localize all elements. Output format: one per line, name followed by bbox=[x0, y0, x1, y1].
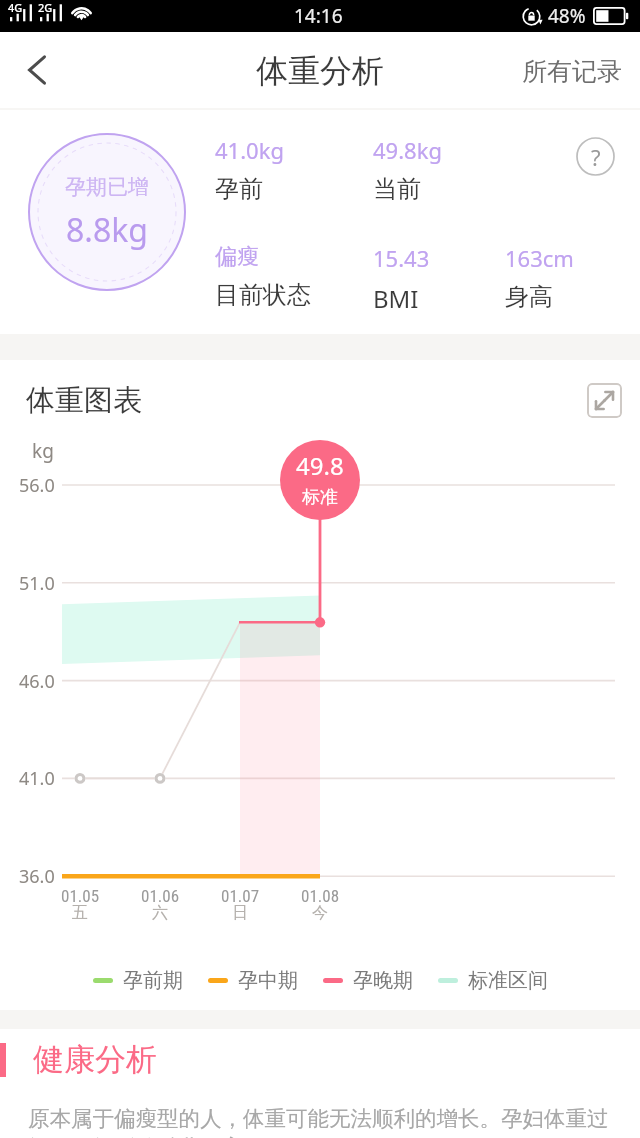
staticText: 日 bbox=[232, 903, 248, 923]
staticText: 8.8kg bbox=[66, 208, 148, 252]
staticText: 孕晚期 bbox=[353, 968, 413, 993]
staticText: 体重图表 bbox=[26, 382, 142, 419]
staticText: 孕期已增 bbox=[65, 174, 149, 200]
staticText: 01.05 bbox=[61, 886, 100, 906]
staticText: 15.43 bbox=[373, 243, 430, 273]
staticText: 当前 bbox=[373, 174, 421, 204]
staticText: 56.0 bbox=[19, 473, 55, 498]
staticText: 所有记录 bbox=[522, 56, 622, 87]
staticText: 孕前 bbox=[215, 174, 263, 204]
staticText: 36.0 bbox=[19, 864, 55, 889]
staticText: BMI bbox=[373, 282, 419, 315]
staticText: 48% bbox=[548, 3, 586, 29]
staticText: 2G bbox=[38, 0, 53, 15]
staticText: 五 bbox=[72, 903, 88, 923]
staticText: 01.06 bbox=[141, 886, 180, 906]
staticText: 41.0kg bbox=[215, 135, 284, 165]
staticText: 49.8kg bbox=[373, 135, 442, 165]
staticText: 孕前期 bbox=[123, 968, 183, 993]
button[interactable]: Back bbox=[0, 32, 78, 110]
staticText: 六 bbox=[152, 903, 168, 923]
button[interactable]: Current weight 49.8 kg bbox=[280, 440, 360, 520]
staticText: 标准 bbox=[302, 486, 338, 509]
button[interactable]: 所有记录 bbox=[504, 38, 640, 105]
staticText: 原本属于偏瘦型的人，体重可能无法顺利的增长。孕妇体重过轻，可能影响胎儿发育。 bbox=[28, 1105, 640, 1138]
staticText: 身高 bbox=[505, 282, 553, 312]
staticText: 01.08 bbox=[301, 886, 340, 906]
staticText: 41.0 bbox=[19, 766, 55, 791]
staticText: 46.0 bbox=[19, 669, 55, 694]
staticText: 标准区间 bbox=[468, 968, 548, 993]
staticText: 偏瘦 bbox=[215, 243, 259, 271]
staticText: 51.0 bbox=[19, 571, 55, 596]
staticText: 4G bbox=[8, 0, 23, 15]
staticText: 孕中期 bbox=[238, 968, 298, 993]
staticText: 目前状态 bbox=[215, 280, 311, 310]
staticText: 今 bbox=[312, 903, 328, 923]
staticText: ? bbox=[591, 142, 601, 172]
staticText: 49.8 bbox=[296, 449, 344, 482]
staticText: 01.07 bbox=[221, 886, 260, 906]
staticText: 163cm bbox=[505, 243, 574, 273]
staticText: 体重分析 bbox=[256, 51, 384, 91]
staticText: 14:16 bbox=[294, 3, 343, 29]
staticText: 健康分析 bbox=[33, 1040, 157, 1079]
button[interactable]: Help bbox=[576, 137, 615, 176]
staticText: kg bbox=[32, 438, 54, 464]
button[interactable]: Expand chart bbox=[587, 383, 622, 418]
